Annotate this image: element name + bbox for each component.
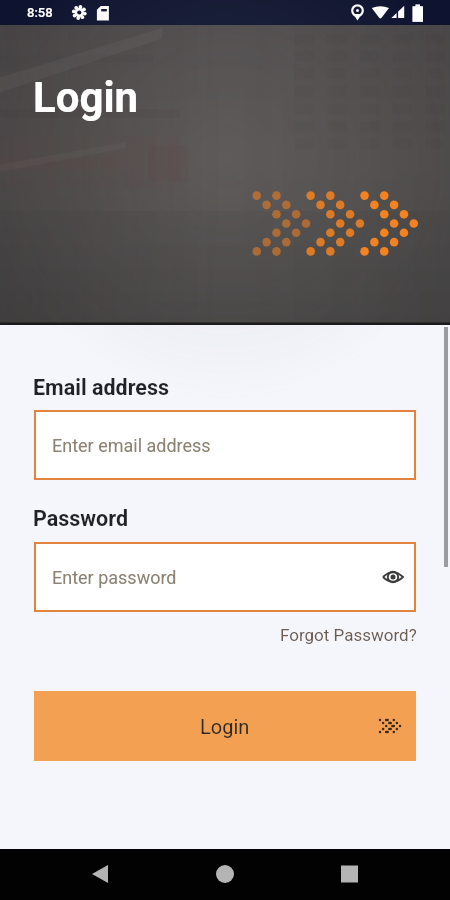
button[interactable]: Enter email address	[34, 410, 416, 480]
staticText: Login	[200, 715, 250, 738]
staticText: Enter password	[52, 567, 177, 588]
staticText: 8:58	[27, 5, 53, 20]
button[interactable]: Login	[34, 691, 416, 761]
button[interactable]: Enter password	[34, 542, 416, 612]
other: Submit	[376, 713, 402, 739]
button[interactable]: Show password	[377, 561, 409, 593]
staticText: Email address	[33, 375, 170, 400]
staticText: Password	[33, 506, 129, 531]
staticText: Login	[33, 73, 139, 122]
staticText: Enter email address	[52, 435, 211, 456]
button[interactable]: Forgot Password?	[280, 620, 450, 650]
